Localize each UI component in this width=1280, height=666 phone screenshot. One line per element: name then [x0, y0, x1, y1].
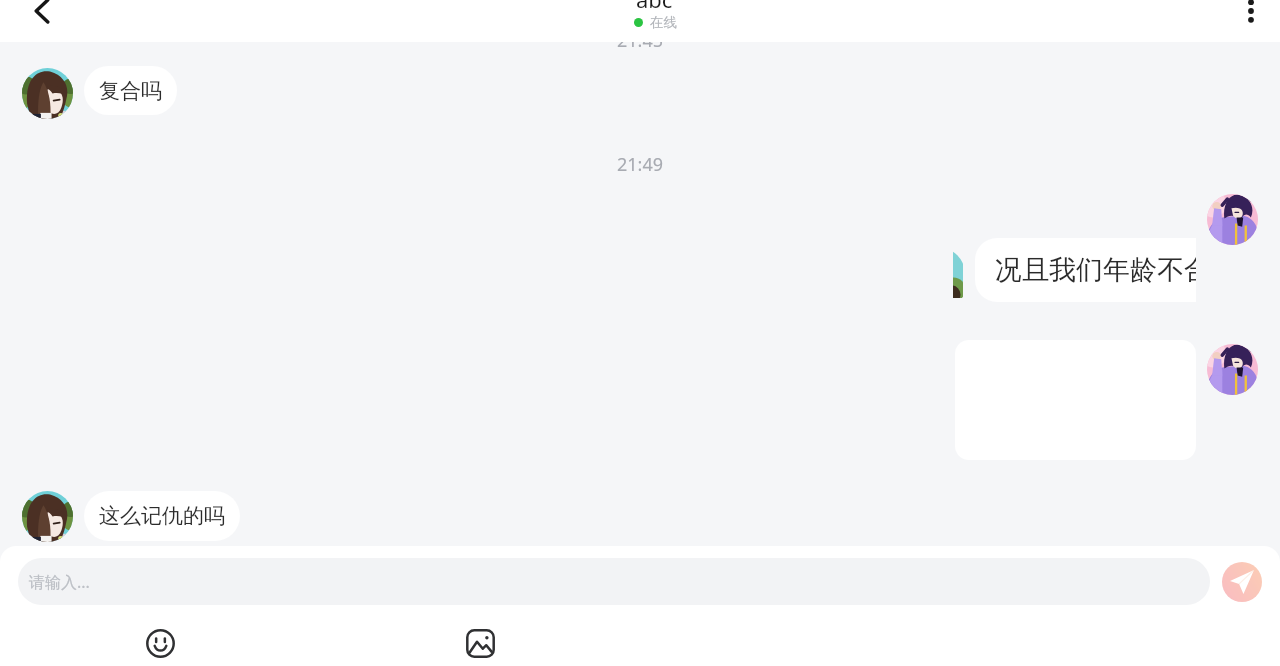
- button[interactable]: Contact avatar: [22, 491, 73, 542]
- button[interactable]: More options: [1231, 0, 1271, 31]
- button[interactable]: 况且我们年龄不合适: [975, 238, 1196, 302]
- button[interactable]: 这么记仇的吗: [84, 491, 240, 541]
- staticText: 21:45: [617, 28, 664, 53]
- button[interactable]: Back: [22, 0, 62, 31]
- button[interactable]: My avatar: [1207, 344, 1258, 395]
- staticText: 复合吗: [99, 78, 162, 104]
- button[interactable]: My avatar: [1207, 194, 1258, 245]
- button[interactable]: 复合吗: [84, 66, 177, 115]
- button[interactable]: Contact avatar: [22, 68, 73, 119]
- staticText: 这么记仇的吗: [99, 503, 225, 529]
- button[interactable]: Emoji: [142, 625, 178, 661]
- button[interactable]: Image: [462, 625, 498, 661]
- button[interactable]: 请输入...: [18, 558, 1210, 605]
- staticText: abc: [636, 0, 673, 14]
- staticText: 请输入...: [29, 571, 90, 593]
- staticText: 况且我们年龄不合适: [995, 253, 1196, 287]
- staticText: 在线: [650, 14, 677, 31]
- staticText: 21:49: [617, 152, 664, 177]
- button[interactable]: Send: [1222, 562, 1262, 602]
